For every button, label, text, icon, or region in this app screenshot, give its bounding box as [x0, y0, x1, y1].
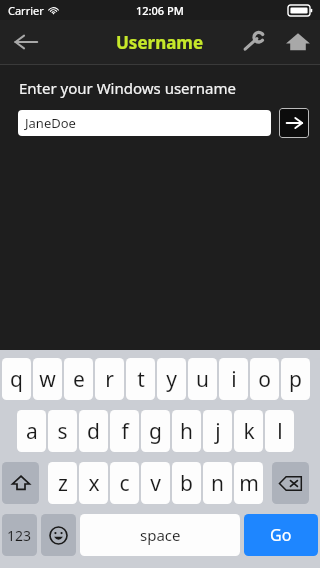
- staticText: o: [258, 365, 271, 394]
- button[interactable]: Emoji: [41, 514, 76, 556]
- staticText: Username: [116, 31, 204, 54]
- button[interactable]: y: [157, 358, 186, 400]
- button[interactable]: a: [17, 410, 46, 452]
- staticText: a: [26, 417, 38, 446]
- button[interactable]: j: [203, 410, 232, 452]
- button[interactable]: c: [110, 462, 139, 504]
- button[interactable]: w: [33, 358, 62, 400]
- staticText: d: [87, 417, 100, 446]
- button[interactable]: p: [281, 358, 310, 400]
- button[interactable]: Settings: [232, 20, 276, 64]
- button[interactable]: o: [250, 358, 279, 400]
- staticText: c: [119, 469, 130, 498]
- button[interactable]: d: [79, 410, 108, 452]
- staticText: x: [88, 469, 100, 498]
- button[interactable]: i: [219, 358, 248, 400]
- staticText: Go: [270, 524, 292, 546]
- staticText: 12:06 PM: [136, 3, 184, 18]
- staticText: s: [57, 417, 68, 446]
- staticText: v: [150, 469, 161, 498]
- staticText: Enter your Windows username: [19, 78, 236, 98]
- staticText: h: [180, 417, 193, 446]
- button[interactable]: k: [234, 410, 263, 452]
- button[interactable]: n: [203, 462, 232, 504]
- staticText: JaneDoe: [25, 114, 76, 132]
- staticText: Carrier: [8, 3, 44, 18]
- button[interactable]: m: [234, 462, 263, 504]
- button[interactable]: Submit: [279, 108, 309, 138]
- staticText: k: [243, 417, 255, 446]
- button[interactable]: e: [64, 358, 93, 400]
- staticText: l: [277, 417, 283, 446]
- staticText: g: [149, 417, 162, 446]
- staticText: 123: [7, 526, 32, 545]
- button[interactable]: Back: [0, 20, 52, 64]
- staticText: i: [231, 365, 237, 394]
- button[interactable]: u: [188, 358, 217, 400]
- staticText: u: [196, 365, 209, 394]
- button[interactable]: JaneDoe: [18, 110, 271, 136]
- button[interactable]: f: [110, 410, 139, 452]
- staticText: w: [39, 365, 56, 394]
- button[interactable]: z: [48, 462, 77, 504]
- button[interactable]: 123: [2, 514, 37, 556]
- staticText: p: [289, 365, 302, 394]
- button[interactable]: b: [172, 462, 201, 504]
- button[interactable]: r: [95, 358, 124, 400]
- button[interactable]: v: [141, 462, 170, 504]
- button[interactable]: Shift: [2, 462, 39, 504]
- staticText: n: [211, 469, 224, 498]
- button[interactable]: x: [79, 462, 108, 504]
- button[interactable]: h: [172, 410, 201, 452]
- button[interactable]: l: [265, 410, 294, 452]
- staticText: r: [105, 365, 114, 394]
- staticText: m: [239, 469, 259, 498]
- staticText: y: [166, 365, 177, 394]
- staticText: t: [137, 365, 145, 394]
- button[interactable]: q: [2, 358, 31, 400]
- staticText: j: [215, 417, 221, 446]
- button[interactable]: Home: [276, 20, 320, 64]
- staticText: e: [73, 365, 85, 394]
- staticText: b: [180, 469, 193, 498]
- button[interactable]: Delete: [272, 462, 309, 504]
- staticText: z: [58, 469, 68, 498]
- staticText: f: [121, 417, 129, 446]
- button[interactable]: s: [48, 410, 77, 452]
- staticText: q: [10, 365, 23, 394]
- button[interactable]: g: [141, 410, 170, 452]
- button[interactable]: t: [126, 358, 155, 400]
- button[interactable]: Go: [244, 514, 318, 556]
- button[interactable]: space: [80, 514, 240, 556]
- staticText: space: [140, 525, 181, 545]
